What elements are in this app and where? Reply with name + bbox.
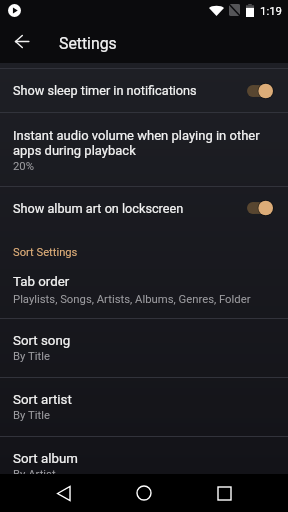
button[interactable]: [0, 377, 288, 436]
staticText: Sort album: [13, 451, 288, 467]
button[interactable]: [0, 69, 288, 113]
staticText: By Title: [13, 409, 288, 422]
button[interactable]: [0, 436, 288, 472]
staticText: Tab order: [13, 274, 288, 290]
staticText: Sort artist: [13, 392, 288, 408]
staticText: Settings: [59, 34, 288, 53]
staticText: Show album art on lockscreen: [13, 201, 238, 216]
staticText: 1:19: [260, 4, 288, 17]
staticText: Show sleep timer in notifications: [13, 83, 238, 98]
staticText: Playlists, Songs, Artists, Albums, Genre…: [13, 293, 288, 306]
staticText: By Artist: [13, 468, 288, 481]
button[interactable]: [0, 318, 288, 377]
button[interactable]: Recent apps: [200, 474, 248, 512]
staticText: Sort song: [13, 333, 288, 349]
button[interactable]: Home: [120, 474, 168, 512]
button[interactable]: [0, 260, 288, 318]
button[interactable]: [0, 113, 288, 187]
button[interactable]: Back: [2, 22, 42, 61]
other: Now playing: [8, 4, 21, 17]
button[interactable]: Back: [40, 474, 88, 512]
button[interactable]: Toggle setting: [246, 199, 274, 217]
button[interactable]: Toggle setting: [246, 82, 274, 100]
staticText: Instant audio volume when playing in oth…: [13, 128, 275, 158]
staticText: 20%: [13, 160, 288, 173]
button[interactable]: [0, 187, 288, 236]
staticText: Sort Settings: [13, 246, 288, 259]
staticText: By Title: [13, 350, 288, 363]
